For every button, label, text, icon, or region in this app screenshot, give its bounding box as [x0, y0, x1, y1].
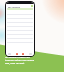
button[interactable]: My Orders — [6, 4, 34, 8]
button[interactable] — [6, 24, 34, 28]
button[interactable] — [6, 36, 34, 40]
button[interactable] — [6, 28, 34, 32]
button[interactable] — [6, 12, 34, 16]
button[interactable] — [6, 40, 34, 44]
button[interactable] — [6, 16, 34, 20]
button[interactable]: Orders — [16, 53, 18, 55]
button[interactable]: Favourites — [22, 53, 24, 55]
staticText: All shipped orders are tracked within on… — [5, 56, 35, 65]
staticText: My Orders — [8, 5, 21, 8]
button[interactable] — [6, 32, 34, 36]
button[interactable] — [6, 20, 34, 24]
